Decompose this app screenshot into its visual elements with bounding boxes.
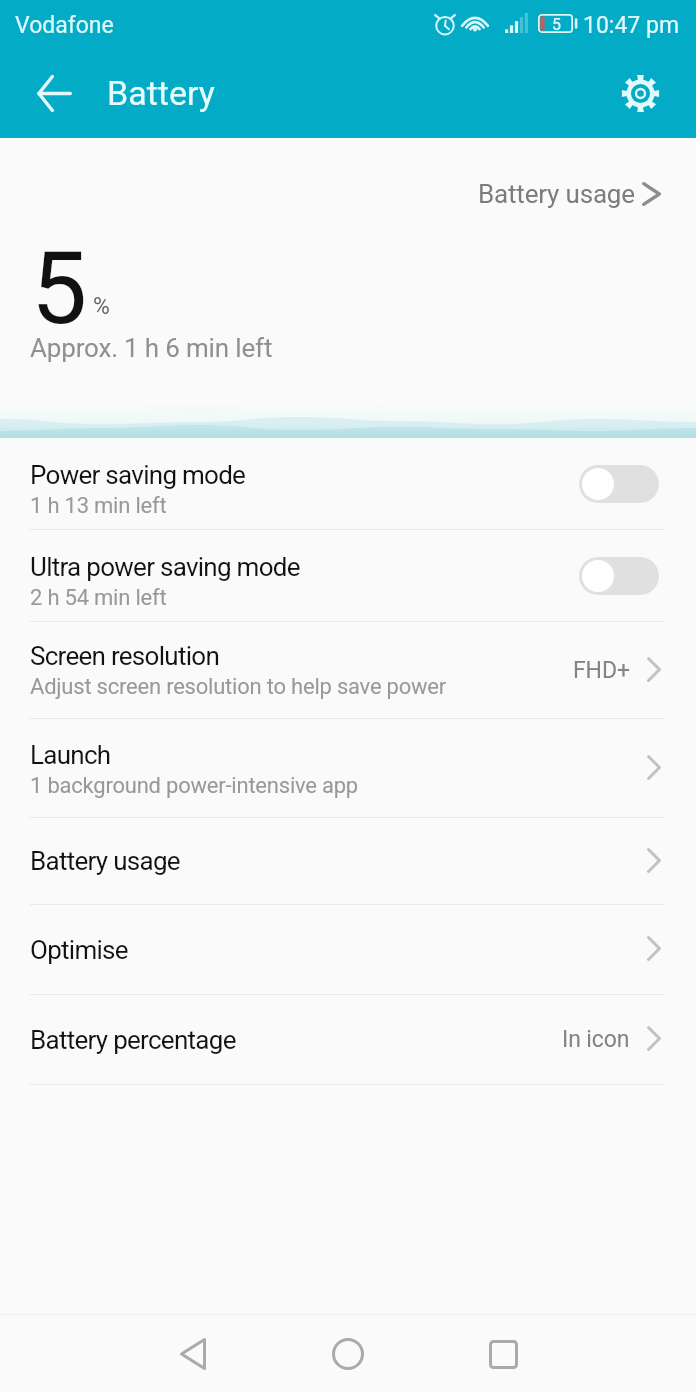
staticText: Battery	[107, 73, 215, 113]
staticText: 5	[552, 15, 561, 34]
button[interactable]: Recents	[465, 1316, 541, 1392]
staticText: Vodafone	[15, 12, 114, 39]
staticText: 5	[31, 230, 88, 347]
staticText: Approx. 1 h 6 min left	[30, 333, 273, 363]
button[interactable]: Settings	[611, 64, 669, 122]
staticText: Ultra power saving mode	[30, 552, 300, 582]
button[interactable]: Ultra power saving mode	[579, 557, 659, 595]
button[interactable]: Back	[24, 63, 84, 123]
staticText: Adjust screen resolution to help save po…	[30, 674, 447, 700]
staticText: 10:47 pm	[583, 12, 680, 39]
button[interactable]: Power saving mode	[0, 438, 696, 529]
staticText: In icon	[562, 1026, 630, 1053]
staticText: Power saving mode	[30, 460, 246, 490]
staticText: 1 h 13 min left	[30, 493, 167, 519]
staticText: 2 h 54 min left	[30, 585, 167, 611]
button[interactable]: Battery percentage	[0, 995, 696, 1084]
button[interactable]: Screen resolution	[0, 622, 696, 718]
staticText: 1 background power-intensive app	[30, 773, 358, 799]
button[interactable]: Launch	[0, 719, 696, 817]
button[interactable]: Battery usage	[0, 818, 696, 904]
staticText: Optimise	[30, 935, 128, 965]
button[interactable]: Power saving mode	[579, 465, 659, 503]
staticText: Launch	[30, 740, 111, 770]
button[interactable]: Back	[154, 1316, 230, 1392]
staticText: Battery usage	[478, 179, 635, 209]
staticText: Battery usage	[30, 846, 180, 876]
staticText: Battery percentage	[30, 1025, 236, 1055]
staticText: %	[93, 293, 110, 320]
button[interactable]: Battery usage	[468, 169, 671, 219]
button[interactable]: Optimise	[0, 905, 696, 994]
staticText: FHD+	[573, 657, 630, 684]
staticText: Screen resolution	[30, 641, 220, 671]
button[interactable]: Home	[310, 1316, 386, 1392]
button[interactable]: Ultra power saving mode	[0, 530, 696, 621]
